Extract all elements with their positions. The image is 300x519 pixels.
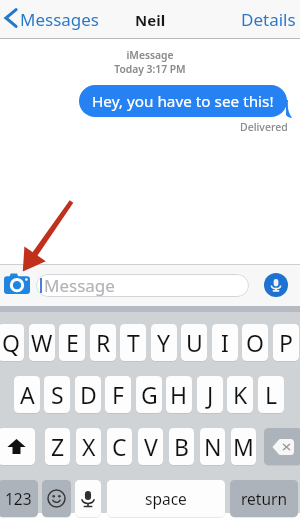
button[interactable]: J xyxy=(197,376,223,413)
button[interactable]: K xyxy=(227,376,253,413)
staticText: Neil xyxy=(135,10,166,30)
button[interactable]: 123 xyxy=(0,480,38,517)
staticText: I xyxy=(221,327,229,358)
button[interactable]: D xyxy=(75,376,101,413)
button[interactable]: Q xyxy=(0,324,24,361)
button[interactable]: I xyxy=(212,324,238,361)
staticText: J xyxy=(207,379,214,410)
staticText: G xyxy=(141,379,158,410)
staticText: V xyxy=(144,431,158,462)
staticText: space xyxy=(145,488,187,509)
button[interactable]: Shift xyxy=(0,428,35,465)
staticText: T xyxy=(127,327,140,358)
staticText: M xyxy=(233,431,254,462)
button[interactable]: Z xyxy=(45,428,70,465)
button[interactable]: A xyxy=(14,376,40,413)
button[interactable]: N xyxy=(200,428,225,465)
button[interactable]: Camera xyxy=(3,272,30,294)
button[interactable]: L xyxy=(258,376,284,413)
button[interactable]: return xyxy=(230,480,298,517)
button[interactable]: R xyxy=(90,324,116,361)
button[interactable]: G xyxy=(136,376,162,413)
staticText: Hey, you have to see this! xyxy=(92,91,274,112)
button[interactable]: Delete xyxy=(264,428,300,465)
button[interactable]: M xyxy=(231,428,256,465)
staticText: O xyxy=(246,327,264,358)
staticText: P xyxy=(279,327,293,358)
staticText: S xyxy=(51,379,64,410)
button[interactable]: E xyxy=(59,324,85,361)
staticText: Y xyxy=(157,327,171,358)
staticText: Q xyxy=(2,327,20,358)
button[interactable]: Dictation xyxy=(75,480,101,517)
staticText: return xyxy=(241,488,287,509)
staticText: A xyxy=(20,379,35,410)
button[interactable]: Y xyxy=(151,324,177,361)
button[interactable]: X xyxy=(76,428,101,465)
button[interactable]: U xyxy=(181,324,207,361)
staticText: U xyxy=(186,327,203,358)
staticText: D xyxy=(80,379,97,410)
staticText: E xyxy=(66,327,79,358)
button[interactable]: Record voice message xyxy=(264,273,288,297)
button[interactable]: space xyxy=(107,480,225,517)
button[interactable]: T xyxy=(120,324,146,361)
staticText: Delivered xyxy=(240,120,288,134)
staticText: B xyxy=(174,431,189,462)
staticText: Z xyxy=(51,431,65,462)
button[interactable]: Hey, you have to see this! xyxy=(79,85,287,117)
button[interactable]: Details xyxy=(237,3,300,36)
button[interactable]: H xyxy=(166,376,192,413)
staticText: Message xyxy=(44,274,115,297)
staticText: C xyxy=(112,431,127,462)
staticText: X xyxy=(82,431,96,462)
staticText: Messages xyxy=(20,8,100,31)
button[interactable]: V xyxy=(138,428,163,465)
button[interactable]: W xyxy=(29,324,55,361)
staticText: L xyxy=(265,379,278,410)
staticText: Details xyxy=(241,8,296,31)
staticText: F xyxy=(112,379,124,410)
staticText: W xyxy=(31,327,53,358)
button[interactable]: C xyxy=(107,428,132,465)
button[interactable]: P xyxy=(273,324,299,361)
staticText: N xyxy=(204,431,222,462)
staticText: iMessage xyxy=(0,48,300,62)
staticText: H xyxy=(170,379,188,410)
button[interactable]: Messages xyxy=(0,3,103,36)
staticText: R xyxy=(96,327,111,358)
staticText: Today 3:17 PM xyxy=(0,62,300,76)
button[interactable]: Message xyxy=(36,274,249,297)
button[interactable]: S xyxy=(44,376,70,413)
button[interactable]: Emoji xyxy=(42,480,71,517)
button[interactable]: O xyxy=(242,324,268,361)
button[interactable]: B xyxy=(169,428,194,465)
staticText: K xyxy=(233,379,248,410)
button[interactable]: F xyxy=(105,376,131,413)
staticText: 123 xyxy=(5,488,32,509)
